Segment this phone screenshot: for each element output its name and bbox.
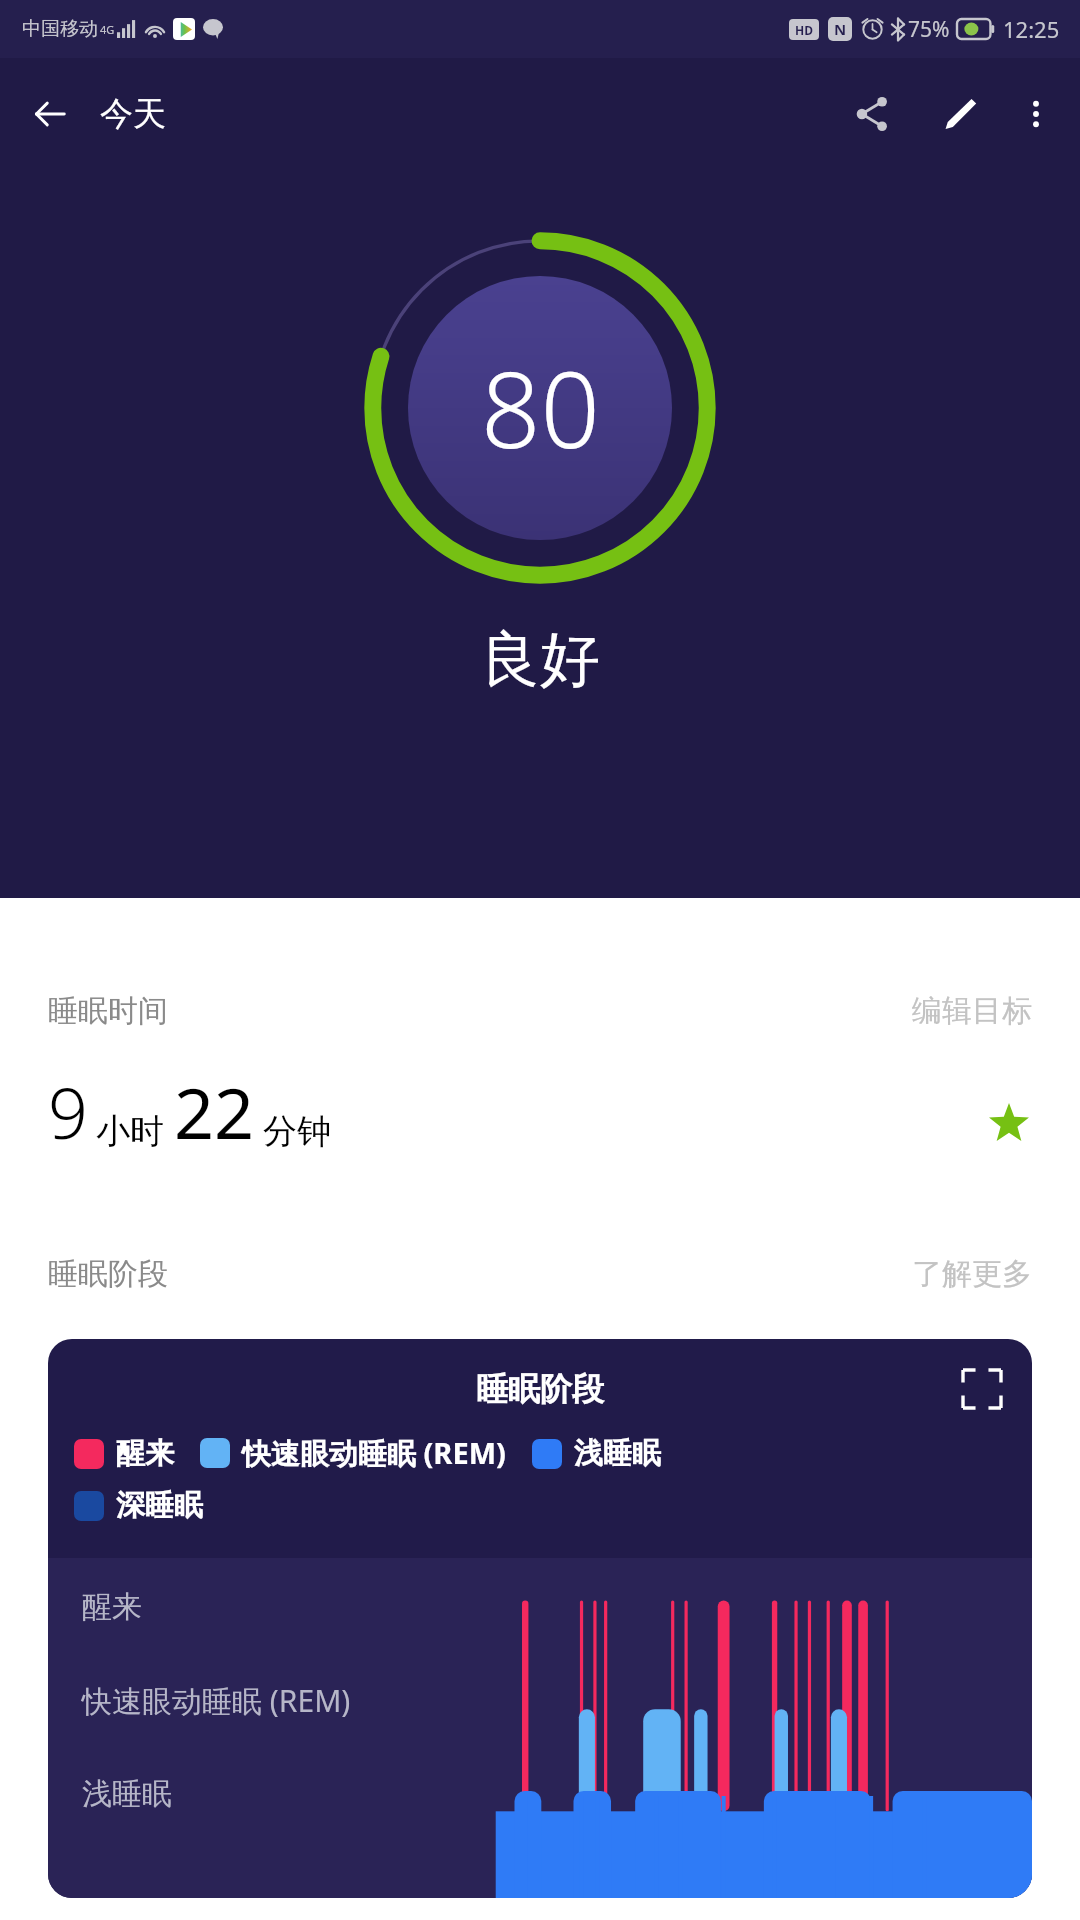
- staticText: HD: [795, 22, 813, 38]
- staticText: 分钟: [263, 1110, 331, 1153]
- other: Goal reached: [986, 1101, 1032, 1147]
- staticText: 12:25: [1003, 14, 1060, 44]
- button[interactable]: 睡眠时间: [48, 992, 1032, 1030]
- staticText: 今天: [100, 93, 166, 135]
- button[interactable]: Back: [14, 78, 86, 150]
- button[interactable]: Edit: [924, 78, 996, 150]
- staticText: 75%: [908, 15, 950, 44]
- staticText: 睡眠时间: [48, 992, 168, 1030]
- staticText: 睡眠阶段: [476, 1369, 604, 1409]
- staticText: 9: [48, 1064, 88, 1159]
- staticText: 深睡眠: [116, 1487, 203, 1524]
- staticText: 快速眼动睡眠 (REM): [242, 1433, 506, 1473]
- staticText: 22: [174, 1064, 255, 1159]
- staticText: 醒来: [116, 1435, 174, 1472]
- staticText: 了解更多: [912, 1255, 1032, 1293]
- staticText: 小时: [96, 1110, 164, 1153]
- staticText: 编辑目标: [912, 992, 1032, 1030]
- staticText: 醒来: [82, 1588, 142, 1626]
- button[interactable]: Share: [836, 78, 908, 150]
- button[interactable]: Expand chart: [958, 1365, 1006, 1413]
- button[interactable]: 睡眠阶段: [48, 1339, 1032, 1898]
- button[interactable]: More options: [1006, 84, 1066, 144]
- button[interactable]: 睡眠阶段: [48, 1255, 1032, 1293]
- staticText: 浅睡眠: [82, 1775, 172, 1813]
- staticText: 4G: [100, 22, 115, 37]
- staticText: 良好: [480, 622, 600, 698]
- staticText: 80: [481, 337, 600, 479]
- staticText: 快速眼动睡眠 (REM): [82, 1680, 351, 1721]
- staticText: 睡眠阶段: [48, 1255, 168, 1293]
- staticText: N: [834, 19, 847, 39]
- staticText: 中国移动: [22, 17, 98, 41]
- staticText: 浅睡眠: [574, 1435, 661, 1472]
